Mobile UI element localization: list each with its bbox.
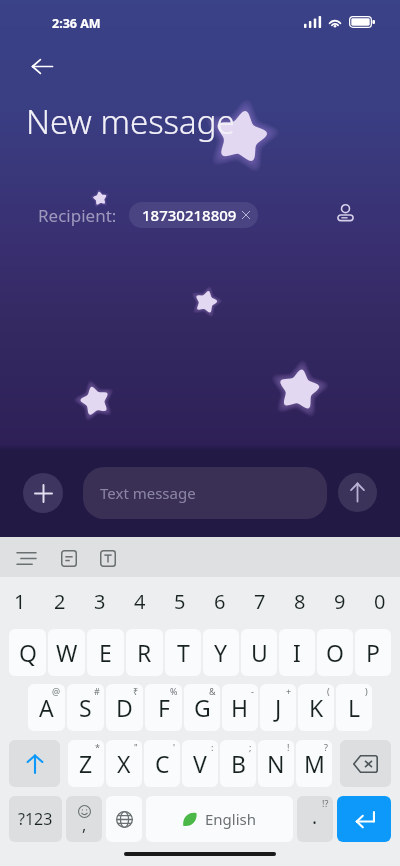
staticText: 6 bbox=[214, 588, 226, 612]
button[interactable]: 3 bbox=[80, 588, 120, 612]
staticText: N bbox=[267, 748, 285, 779]
staticText: W bbox=[56, 637, 78, 668]
button[interactable]: Back bbox=[24, 48, 60, 84]
button[interactable]: G bbox=[184, 684, 220, 731]
button[interactable]: Clipboard bbox=[53, 543, 84, 574]
button[interactable]: W bbox=[48, 629, 85, 676]
button[interactable]: B bbox=[220, 740, 256, 787]
button[interactable]: Change language bbox=[106, 796, 142, 842]
staticText: D bbox=[116, 692, 133, 723]
staticText: ! bbox=[287, 741, 290, 753]
button[interactable]: K bbox=[298, 684, 334, 731]
staticText: 5 bbox=[174, 588, 186, 612]
staticText: B bbox=[231, 748, 246, 779]
staticText: 8 bbox=[294, 588, 306, 612]
staticText: 0 bbox=[374, 588, 386, 612]
staticText: 9 bbox=[334, 588, 346, 612]
staticText: U bbox=[251, 637, 268, 668]
button[interactable]: 4 bbox=[120, 588, 160, 612]
staticText: G bbox=[194, 692, 211, 723]
staticText: 18730218809 bbox=[142, 205, 237, 225]
staticText: % bbox=[170, 685, 178, 697]
button[interactable]: 6 bbox=[200, 588, 240, 612]
staticText: ( bbox=[327, 685, 330, 697]
staticText: ' bbox=[173, 741, 176, 753]
button[interactable]: A bbox=[28, 684, 65, 731]
button[interactable]: Text style bbox=[92, 543, 123, 574]
button[interactable]: X bbox=[106, 740, 142, 787]
button[interactable]: O bbox=[317, 629, 353, 676]
staticText: K bbox=[309, 692, 324, 723]
staticText: Recipient: bbox=[38, 204, 117, 227]
button[interactable]: I bbox=[279, 629, 315, 676]
button[interactable]: 18730218809 bbox=[129, 202, 258, 228]
button[interactable]: R bbox=[126, 629, 163, 676]
staticText: !? bbox=[322, 797, 329, 809]
staticText: S bbox=[79, 692, 92, 723]
button[interactable]: 0 bbox=[360, 588, 400, 612]
staticText: V bbox=[193, 748, 207, 779]
button[interactable]: U bbox=[241, 629, 277, 676]
button[interactable]: Enter bbox=[337, 796, 391, 842]
staticText: F bbox=[158, 692, 170, 723]
button[interactable]: D bbox=[106, 684, 143, 731]
button[interactable]: . bbox=[297, 796, 333, 842]
staticText: # bbox=[94, 685, 100, 697]
button[interactable]: 7 bbox=[240, 588, 280, 612]
button[interactable]: Choose contact bbox=[328, 196, 362, 230]
button[interactable]: J bbox=[260, 684, 296, 731]
staticText: T bbox=[177, 637, 190, 668]
button[interactable]: Send bbox=[338, 473, 377, 512]
button[interactable]: E bbox=[87, 629, 124, 676]
staticText: . bbox=[312, 804, 318, 830]
button[interactable]: M bbox=[296, 740, 332, 787]
staticText: * bbox=[95, 741, 100, 753]
staticText: Z bbox=[79, 748, 93, 779]
staticText: Text message bbox=[100, 483, 196, 503]
staticText: C bbox=[155, 748, 170, 779]
button[interactable]: T bbox=[165, 629, 201, 676]
staticText: 2 bbox=[54, 588, 66, 612]
button[interactable]: Text message bbox=[83, 467, 327, 519]
button[interactable]: 1 bbox=[0, 588, 40, 612]
staticText: 1 bbox=[14, 588, 26, 612]
button[interactable]: 8 bbox=[280, 588, 320, 612]
staticText: ; bbox=[249, 741, 252, 753]
button[interactable]: H bbox=[222, 684, 258, 731]
staticText: ?123 bbox=[18, 808, 53, 830]
button[interactable]: S bbox=[67, 684, 104, 731]
button[interactable]: Y bbox=[203, 629, 239, 676]
button[interactable]: 5 bbox=[160, 588, 200, 612]
staticText: " bbox=[134, 741, 138, 753]
button[interactable]: Add attachment bbox=[23, 473, 63, 513]
button[interactable]: Emoji bbox=[66, 796, 102, 842]
staticText: 4 bbox=[134, 588, 146, 612]
staticText: - bbox=[251, 685, 254, 697]
staticText: P bbox=[366, 637, 380, 668]
staticText: @ bbox=[52, 685, 61, 697]
button[interactable]: ?123 bbox=[9, 796, 62, 842]
button[interactable]: Q bbox=[9, 629, 46, 676]
button[interactable]: F bbox=[145, 684, 182, 731]
staticText: 2:36 AM bbox=[52, 15, 101, 32]
button[interactable]: 9 bbox=[320, 588, 360, 612]
button[interactable]: Z bbox=[68, 740, 104, 787]
button[interactable]: V bbox=[182, 740, 218, 787]
staticText: E bbox=[99, 637, 112, 668]
button[interactable]: 2 bbox=[40, 588, 80, 612]
button[interactable]: Shift bbox=[9, 740, 60, 787]
button[interactable]: L bbox=[336, 684, 372, 731]
button[interactable]: English bbox=[146, 796, 293, 842]
staticText: L bbox=[348, 692, 361, 723]
button[interactable]: P bbox=[355, 629, 391, 676]
button[interactable]: C bbox=[144, 740, 180, 787]
button[interactable]: Backspace bbox=[340, 740, 391, 787]
staticText: A bbox=[39, 692, 54, 723]
button[interactable]: N bbox=[258, 740, 294, 787]
staticText: Q bbox=[19, 637, 37, 668]
staticText: R bbox=[137, 637, 152, 668]
staticText: New message bbox=[26, 99, 235, 144]
staticText: & bbox=[209, 685, 216, 697]
staticText: 7 bbox=[254, 588, 266, 612]
button[interactable]: Text editing bbox=[11, 543, 42, 574]
